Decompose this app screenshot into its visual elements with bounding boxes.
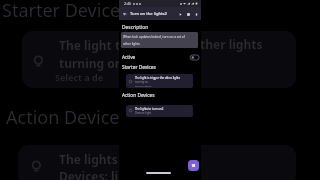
staticText: The lights [59,151,118,167]
staticText: The light is trigger the other lights [135,76,180,80]
staticText: Devices: light [135,111,152,115]
staticText: Active [122,54,136,60]
staticText: turning on. [135,80,149,84]
button[interactable]: Active [122,52,199,62]
button[interactable]: Run [176,10,184,18]
staticText: turning on [59,55,123,71]
button[interactable]: The light is trigger the other lights [126,74,193,88]
staticText: Starter Devices [122,64,156,71]
staticText: Devices: lig [59,168,126,180]
button[interactable]: The lights to turn on2 [126,105,193,117]
staticText: Select a de [55,71,104,83]
staticText: Action Devices [122,92,155,99]
staticText: Select a device [135,84,152,87]
button[interactable]: Back [121,10,129,18]
button[interactable]: Save [184,10,192,18]
button[interactable]: Add [188,160,199,171]
staticText: ther lights [200,36,263,52]
staticText: Starter Devices [2,0,129,23]
staticText: The light t [59,37,121,53]
staticText: Action Devices [6,105,129,130]
staticText: The lights to turn on2 [135,107,164,111]
staticText: Description [122,24,149,31]
staticText: 2:46 [124,1,132,6]
staticText: Turn on the lights2 [130,11,167,17]
button[interactable]: Delete [192,10,200,18]
staticText: When lock updates locked, turn on a set … [123,35,185,45]
